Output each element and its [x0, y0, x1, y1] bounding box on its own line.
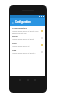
button[interactable]: Back [11, 21, 14, 24]
staticText: Type [12, 42, 17, 45]
button[interactable]: Mode [10, 35, 45, 42]
staticText: Size [12, 49, 17, 52]
staticText: Complimentary [12, 27, 28, 30]
staticText: Lorem ipsum dolor sit amet cons [12, 30, 39, 32]
staticText: Lorem ipsum dolor sit [12, 45, 30, 47]
staticText: adipiscing elit sed [12, 32, 27, 34]
staticText: Configuration [15, 21, 31, 24]
button[interactable]: Size [10, 49, 45, 56]
staticText: Mode [12, 35, 18, 38]
button[interactable]: Complimentary [10, 27, 45, 36]
staticText: Lorem ipsum dolor sit amet [12, 38, 34, 40]
button[interactable]: Type [10, 42, 45, 49]
staticText: Lorem ipsum dolor sit amet c [12, 52, 36, 54]
